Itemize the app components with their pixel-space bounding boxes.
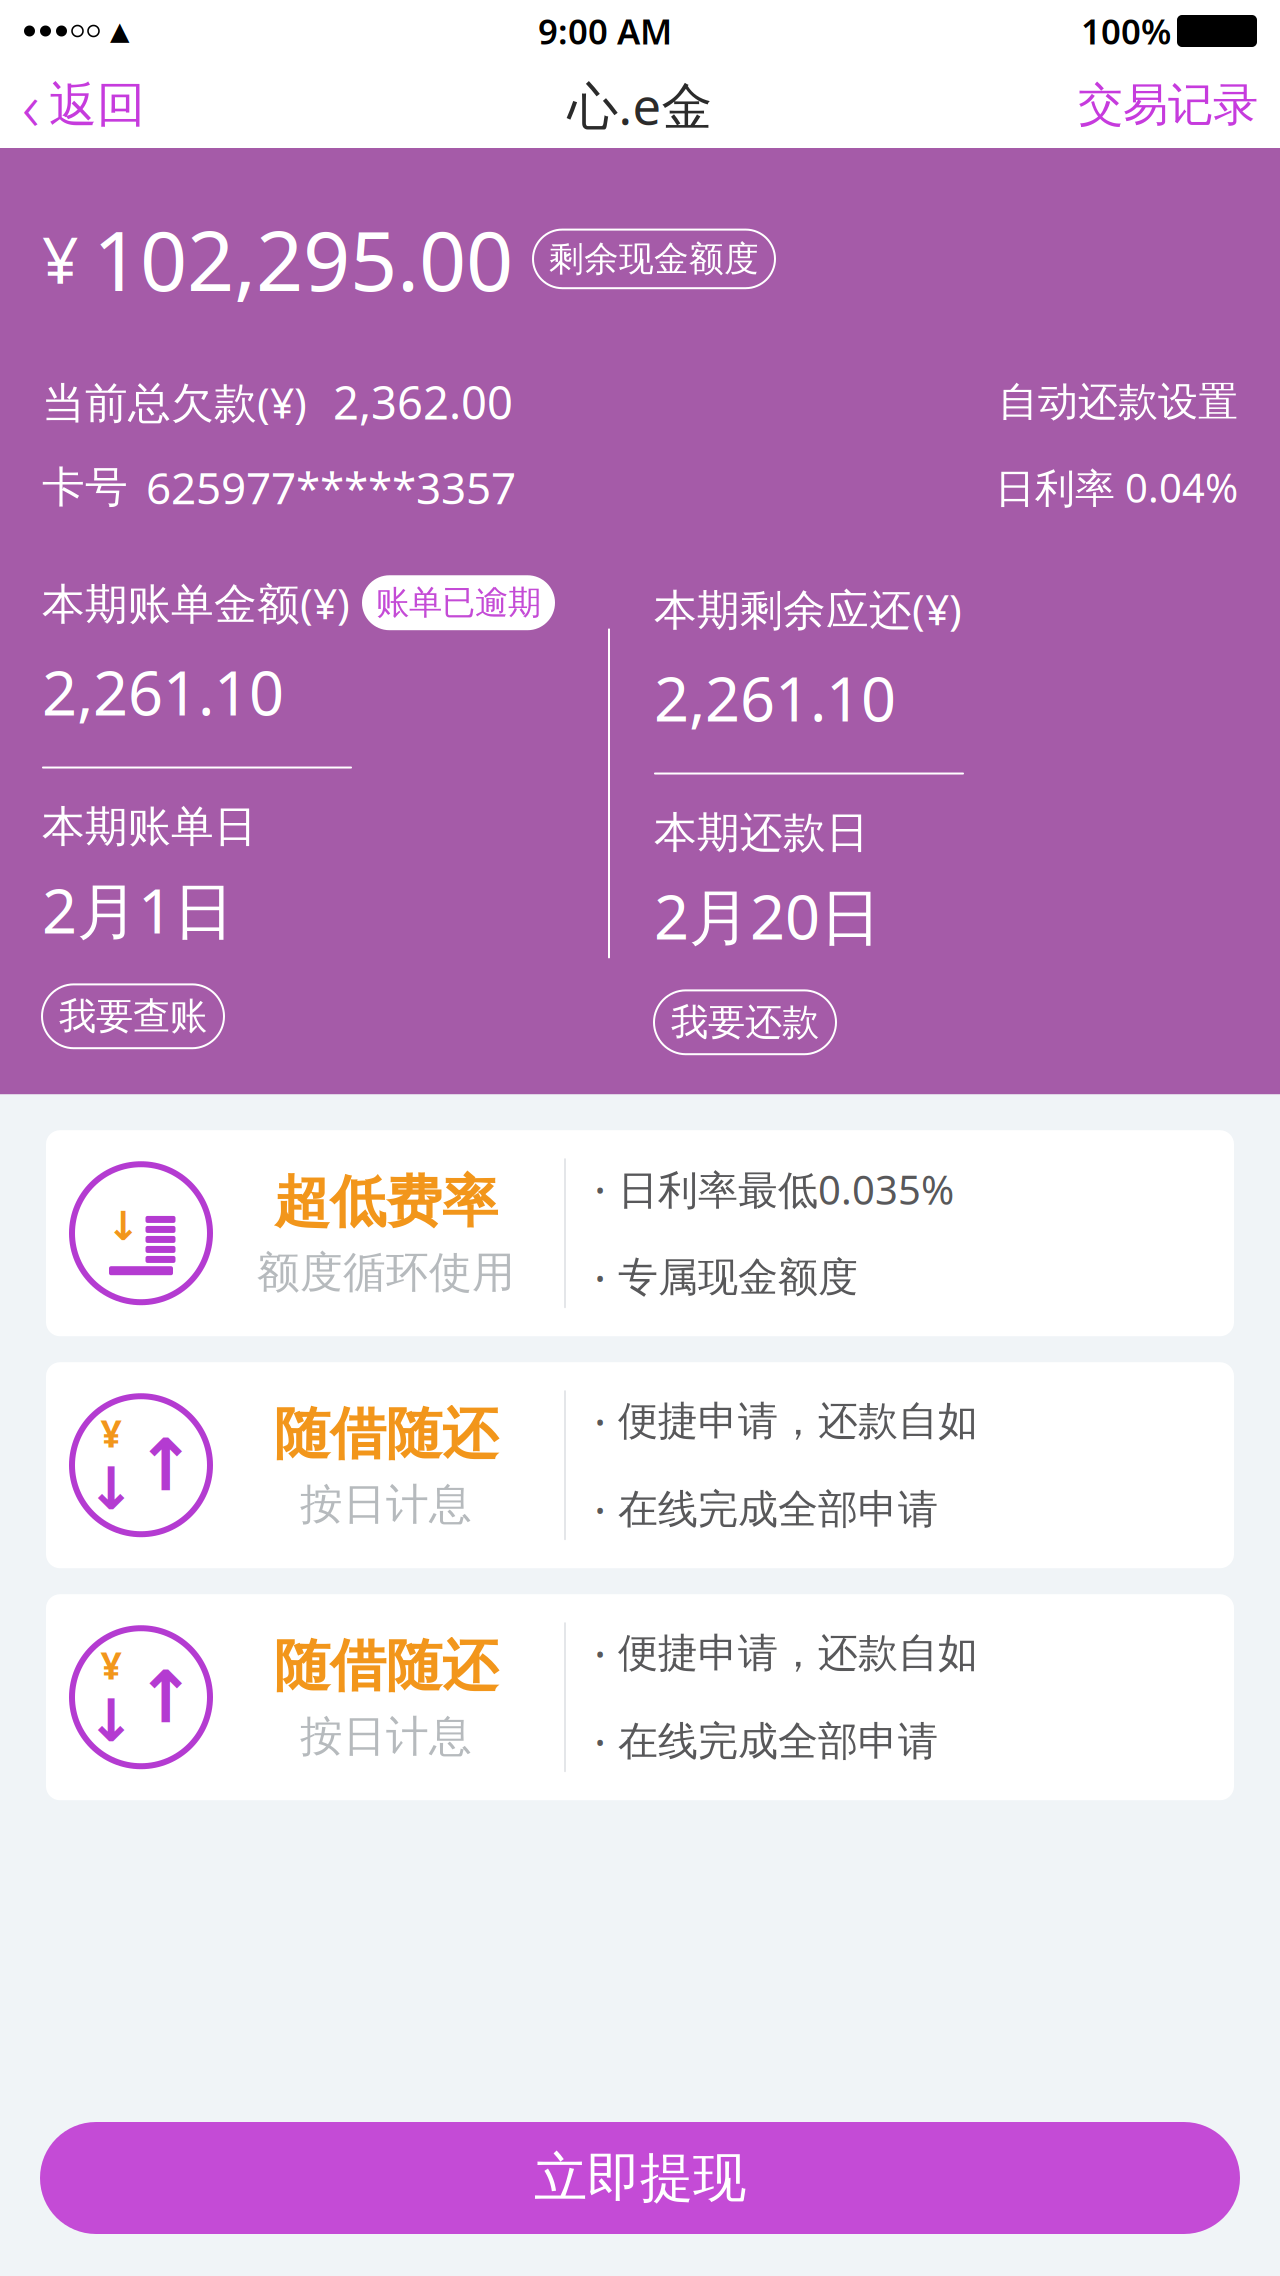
staticText: 在线完成全部申请 <box>618 1485 938 1534</box>
staticText: 2月20日 <box>654 875 881 956</box>
staticText: ▲ <box>110 17 129 45</box>
staticText: 本期还款日 <box>654 806 869 859</box>
staticText: 立即提现 <box>534 2145 746 2211</box>
staticText: 我要还款 <box>671 999 819 1045</box>
staticText: 账单已逾期 <box>376 582 541 623</box>
button[interactable]: 我要查账 <box>42 984 224 1048</box>
staticText: 按日计息 <box>300 1478 472 1531</box>
staticText: ¥ <box>100 1640 121 1690</box>
staticText: 625977*****3357 <box>146 458 516 516</box>
staticText: 便捷申请，还款自如 <box>618 1397 978 1446</box>
staticText: ↓ <box>86 1688 135 1754</box>
staticText: 2,362.00 <box>333 372 513 432</box>
staticText: 交易记录 <box>1078 77 1258 133</box>
staticText: 2,261.10 <box>654 657 896 738</box>
staticText: 日利率 0.04% <box>995 461 1238 514</box>
staticText: 随借随还 <box>274 1400 498 1468</box>
staticText: ↓ <box>106 1203 140 1249</box>
staticText: · <box>594 1623 606 1683</box>
staticText: 便捷申请，还款自如 <box>618 1629 978 1678</box>
staticText: 100% <box>1081 8 1171 54</box>
staticText: · <box>594 1247 606 1307</box>
staticText: 额度循环使用 <box>257 1246 515 1299</box>
staticText: 2月1日 <box>42 869 234 950</box>
staticText: 专属现金额度 <box>618 1253 858 1302</box>
staticText: 返回 <box>49 75 145 134</box>
button[interactable]: ↓ <box>46 1130 1234 1336</box>
staticText: · <box>594 1159 606 1219</box>
staticText: 随借随还 <box>274 1632 498 1700</box>
button[interactable]: 自动还款设置 <box>998 377 1238 426</box>
button[interactable]: ¥ <box>46 1594 1234 1800</box>
button[interactable]: ‹ <box>0 63 167 147</box>
staticText: 在线完成全部申请 <box>618 1717 938 1766</box>
staticText: 日利率最低0.035% <box>618 1163 954 1216</box>
staticText: ↑ <box>135 1424 195 1506</box>
button[interactable]: 交易记录 <box>1056 63 1280 147</box>
staticText: · <box>594 1479 606 1539</box>
staticText: 剩余现金额度 <box>549 238 759 280</box>
staticText: ↑ <box>135 1656 195 1738</box>
staticText: 9:00 AM <box>538 8 672 54</box>
staticText: · <box>594 1711 606 1771</box>
staticText: ¥ <box>42 216 79 301</box>
staticText: 102,295.00 <box>93 204 513 314</box>
staticText: 超低费率 <box>274 1168 498 1236</box>
staticText: 本期账单金额(¥) <box>42 574 350 631</box>
staticText: 卡号 <box>42 461 128 513</box>
staticText: ↓ <box>86 1456 135 1522</box>
staticText: 本期剩余应还(¥) <box>654 580 962 637</box>
staticText: ¥ <box>100 1408 121 1458</box>
staticText: · <box>594 1391 606 1451</box>
staticText: 我要查账 <box>59 993 207 1039</box>
staticText: ‹ <box>22 61 40 149</box>
staticText: 2,261.10 <box>42 651 284 732</box>
staticText: 本期账单日 <box>42 800 257 853</box>
staticText: 心.e金 <box>567 71 712 139</box>
button[interactable]: 我要还款 <box>654 990 836 1054</box>
staticText: 当前总欠款(¥) <box>42 373 307 430</box>
button[interactable]: ¥ <box>46 1362 1234 1568</box>
staticText: 按日计息 <box>300 1710 472 1763</box>
staticText: 自动还款设置 <box>998 377 1238 426</box>
button[interactable]: 立即提现 <box>40 2122 1240 2234</box>
